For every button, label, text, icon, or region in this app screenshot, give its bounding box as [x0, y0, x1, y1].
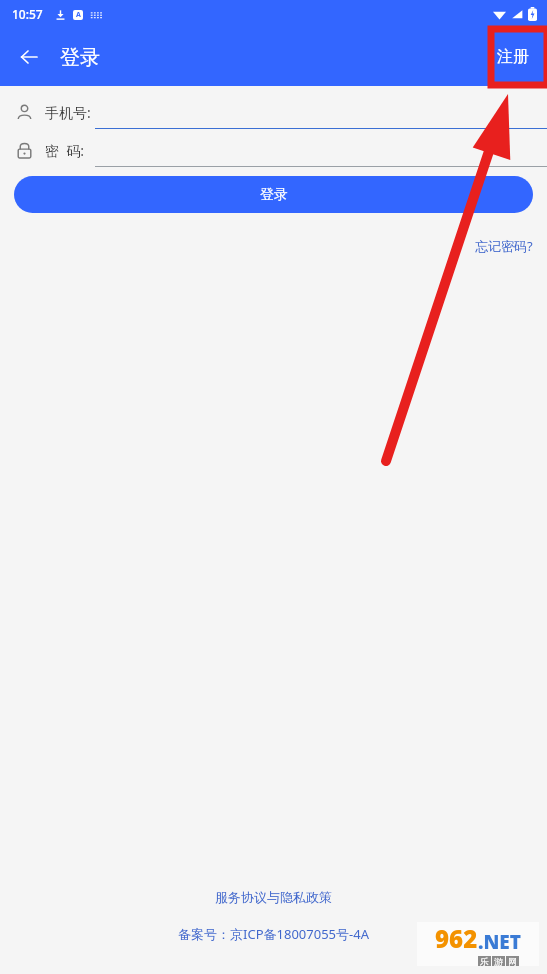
button[interactable]: 备案号：京ICP备18007055号-4A [0, 925, 547, 943]
staticText: 登录 [60, 45, 100, 70]
staticText: 10:57 [12, 6, 43, 22]
staticText: 登录 [260, 186, 288, 204]
button[interactable]: 密 码: [0, 134, 547, 166]
button[interactable]: 忘记密码? [471, 235, 537, 257]
button[interactable]: 服务协议与隐私政策 [0, 889, 547, 905]
staticText: A [76, 10, 81, 20]
staticText: .NET [478, 929, 521, 955]
staticText: 服务协议与隐私政策 [215, 889, 332, 905]
staticText: 注册 [497, 47, 529, 67]
button[interactable]: 返回 [10, 38, 48, 76]
button[interactable]: 登录 [14, 176, 533, 213]
staticText: 备案号：京ICP备18007055号-4A [178, 925, 369, 943]
staticText: 乐 [480, 956, 489, 966]
staticText: 手机号: [45, 103, 91, 122]
staticText: 网 [508, 956, 517, 966]
staticText: 密 码: [45, 141, 85, 160]
staticText: 游 [494, 956, 503, 966]
button[interactable]: 手机号: [0, 96, 547, 128]
staticText: 忘记密码? [475, 237, 533, 255]
button[interactable]: 注册 [487, 41, 539, 73]
staticText: 962 [435, 922, 478, 955]
